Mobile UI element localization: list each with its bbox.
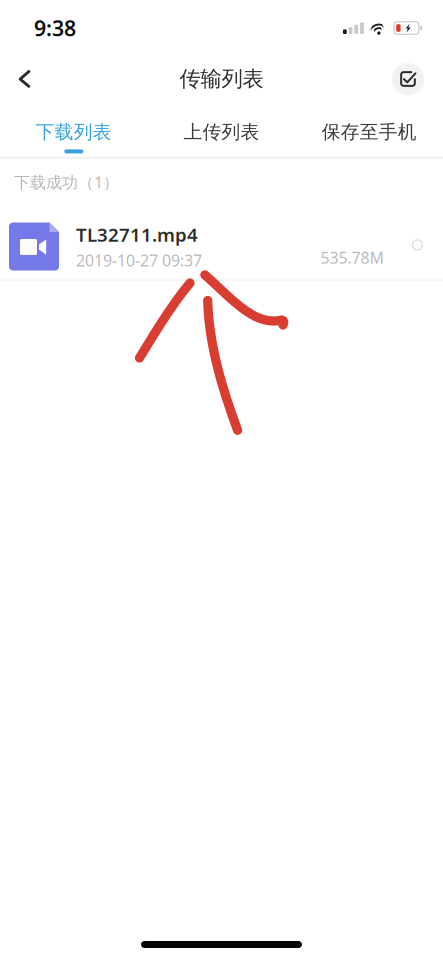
staticText: 保存至手机 [322, 120, 417, 143]
button[interactable]: 下载列表 [0, 102, 148, 157]
staticText: 上传列表 [183, 120, 259, 143]
button[interactable]: TL32711.mp4 [0, 200, 443, 278]
staticText: TL32711.mp4 [76, 222, 198, 247]
button[interactable]: 保存至手机 [295, 102, 443, 157]
staticText: 下载成功（1） [14, 171, 119, 193]
button[interactable]: 上传列表 [148, 102, 295, 157]
staticText: 2019-10-27 09:37 [76, 250, 202, 271]
button[interactable]: Back [0, 57, 46, 101]
staticText: 9:38 [34, 14, 76, 42]
staticText: 传输列表 [179, 66, 263, 92]
staticText: 下载列表 [36, 120, 112, 143]
button[interactable]: Select [385, 57, 431, 101]
staticText: 535.78M [320, 247, 384, 268]
